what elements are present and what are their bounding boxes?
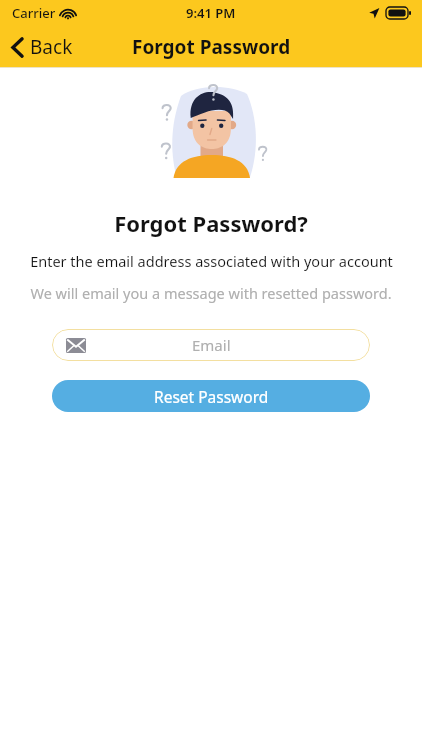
staticText: Carrier bbox=[12, 4, 56, 22]
staticText: Email bbox=[192, 335, 231, 355]
staticText: Forgot Password? bbox=[114, 208, 308, 238]
button[interactable]: Email bbox=[52, 329, 370, 361]
staticText: Back bbox=[30, 34, 73, 60]
staticText: Reset Password bbox=[154, 386, 269, 407]
staticText: Enter the email address associated with … bbox=[30, 251, 393, 271]
button[interactable]: Back bbox=[0, 28, 87, 66]
staticText: Forgot Password bbox=[132, 34, 291, 60]
staticText: We will email you a message with resette… bbox=[30, 283, 392, 303]
button[interactable]: Reset Password bbox=[52, 380, 370, 412]
staticText: 9:41 PM bbox=[186, 4, 236, 22]
